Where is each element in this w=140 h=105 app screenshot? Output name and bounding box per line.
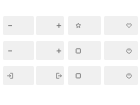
button[interactable]: Log out xyxy=(36,66,64,85)
button[interactable]: Power xyxy=(104,66,138,85)
button[interactable]: Like xyxy=(104,16,138,35)
button[interactable]: Power xyxy=(104,41,138,60)
button[interactable]: Log in xyxy=(3,66,34,85)
button[interactable]: Stop xyxy=(68,66,101,85)
button[interactable]: Stop xyxy=(68,41,101,60)
button[interactable]: Remove xyxy=(3,16,34,35)
button[interactable]: Remove xyxy=(3,41,34,60)
button[interactable]: Favourite xyxy=(68,16,101,35)
button[interactable]: Add xyxy=(36,41,64,60)
button[interactable]: Add xyxy=(36,16,64,35)
